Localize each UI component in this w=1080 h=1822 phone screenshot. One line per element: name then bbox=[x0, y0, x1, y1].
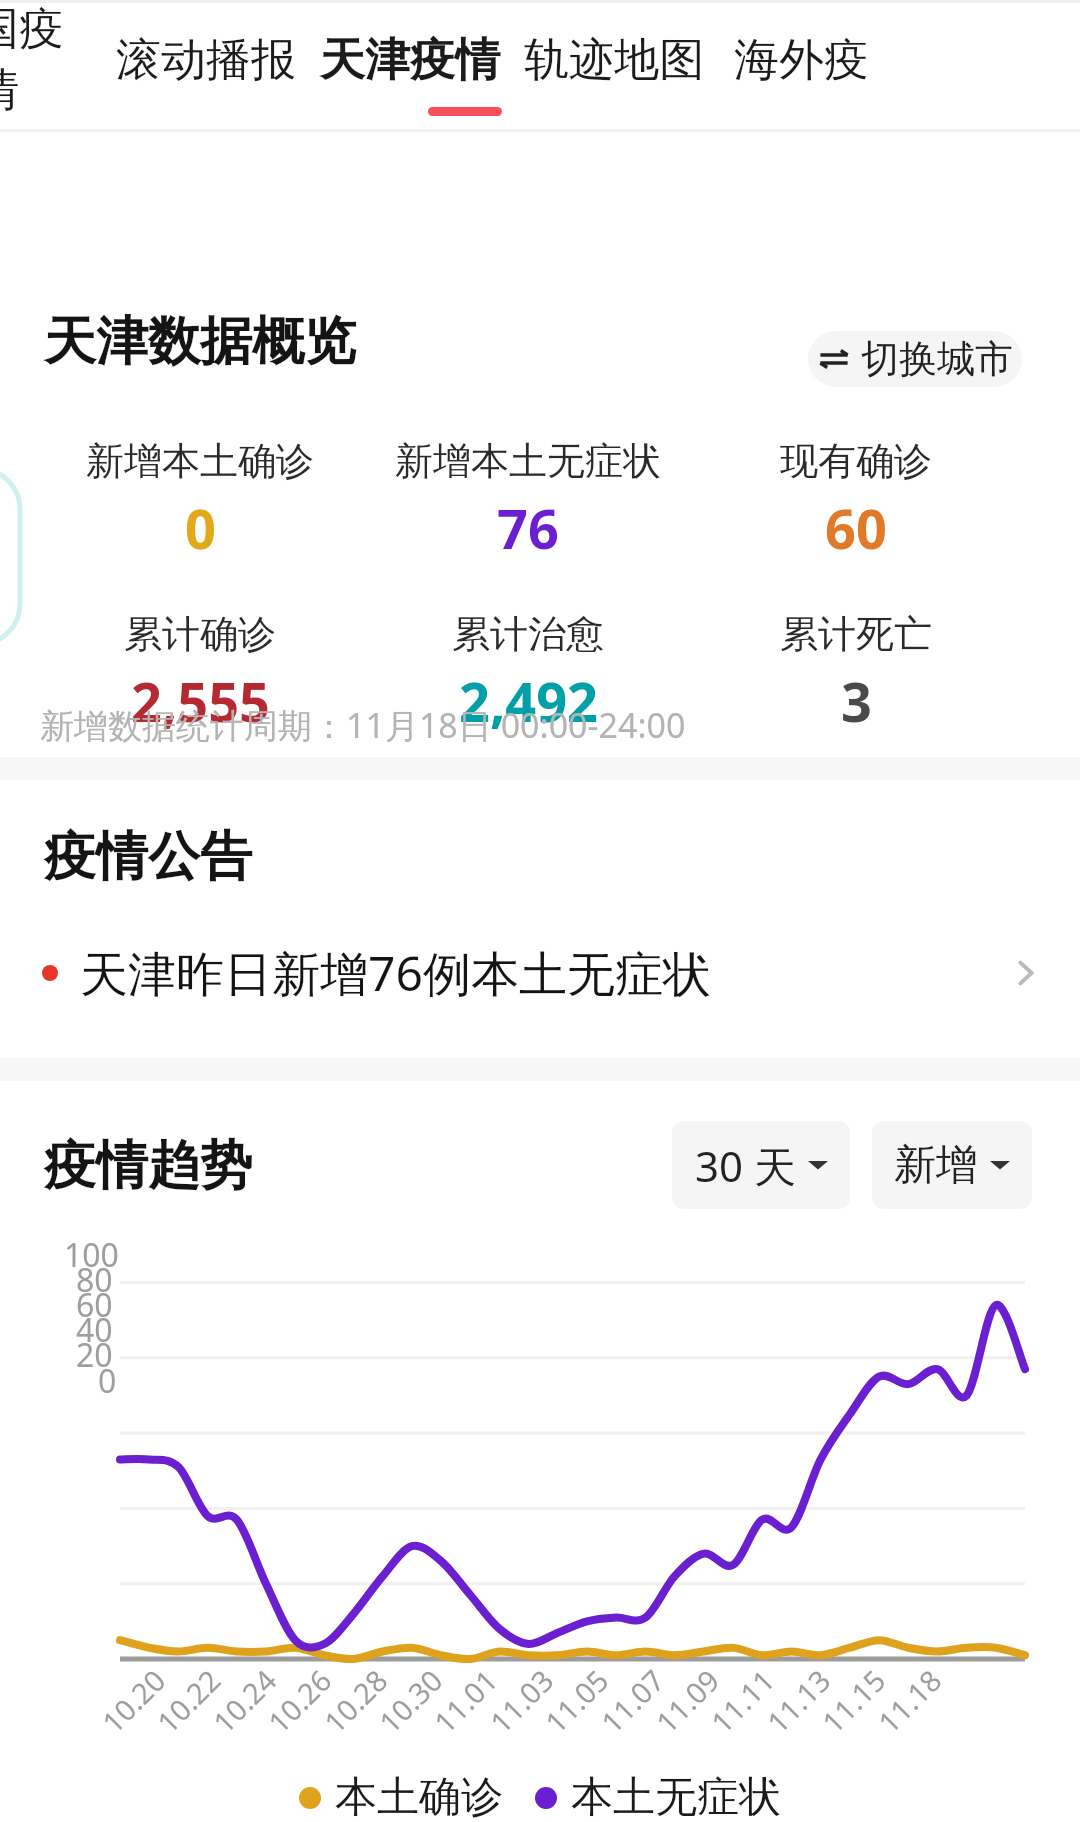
button[interactable]: 切换城市 bbox=[808, 331, 1022, 387]
button[interactable]: 累计死亡 bbox=[676, 610, 1036, 738]
staticText: 2,492 bbox=[459, 664, 598, 738]
button[interactable]: 新增本土确诊 bbox=[20, 437, 380, 565]
staticText: 疫情公告 bbox=[44, 824, 252, 890]
staticText: 轨迹地图 bbox=[524, 32, 704, 89]
staticText: 60 bbox=[76, 1283, 113, 1327]
staticText: 新增本土确诊 bbox=[86, 437, 314, 485]
staticText: 新增数据统计周期：11月18日 00:00-24:00 bbox=[40, 702, 686, 748]
staticText: 天津昨日新增76例本土无症状 bbox=[80, 940, 711, 1006]
staticText: 40 bbox=[76, 1308, 113, 1352]
staticText: 天津疫情 bbox=[320, 32, 500, 89]
button[interactable]: 新增 bbox=[872, 1121, 1032, 1209]
staticText: 累计治愈 bbox=[452, 610, 604, 658]
button[interactable]: 滚动播报 bbox=[104, 0, 308, 120]
staticText: 10.20 bbox=[93, 1660, 174, 1741]
staticText: 0 bbox=[185, 491, 216, 565]
staticText: 11.05 bbox=[536, 1660, 617, 1741]
button[interactable]: 国疫情 bbox=[0, 0, 78, 120]
staticText: 本土确诊 bbox=[335, 1771, 503, 1822]
staticText: 11.01 bbox=[425, 1660, 506, 1741]
staticText: 海外疫 bbox=[734, 32, 869, 89]
button[interactable]: 现有确诊 bbox=[676, 437, 1036, 565]
staticText: 0 bbox=[98, 1359, 117, 1403]
staticText: 累计死亡 bbox=[780, 610, 932, 658]
staticText: 76 bbox=[497, 491, 559, 565]
staticText: 3 bbox=[841, 664, 872, 738]
staticText: 11.13 bbox=[758, 1660, 839, 1741]
staticText: 天津数据概览 bbox=[44, 309, 356, 375]
other: More bbox=[1006, 953, 1046, 993]
button[interactable]: 天津昨日新增76例本土无症状 bbox=[0, 930, 1080, 1016]
staticText: 20 bbox=[76, 1333, 113, 1377]
staticText: 切换城市 bbox=[861, 335, 1013, 383]
staticText: 新增本土无症状 bbox=[395, 437, 661, 485]
staticText: 11.11 bbox=[702, 1660, 783, 1741]
staticText: 滚动播报 bbox=[116, 32, 296, 89]
button[interactable]: 轨迹地图 bbox=[512, 0, 716, 120]
staticText: 10.26 bbox=[259, 1660, 340, 1741]
staticText: 11.18 bbox=[869, 1660, 950, 1741]
button[interactable]: 海外疫 bbox=[716, 0, 886, 120]
staticText: 10.22 bbox=[148, 1660, 229, 1741]
staticText: 11.07 bbox=[592, 1660, 673, 1741]
staticText: 累计确诊 bbox=[124, 610, 276, 658]
button[interactable]: 天津疫情 bbox=[308, 0, 512, 120]
button[interactable]: 累计治愈 bbox=[348, 610, 708, 738]
button[interactable]: 30 天 bbox=[672, 1121, 850, 1209]
staticText: 30 天 bbox=[695, 1137, 796, 1194]
staticText: 80 bbox=[76, 1258, 113, 1302]
button[interactable]: 累计确诊 bbox=[20, 610, 380, 738]
staticText: 11.15 bbox=[813, 1660, 894, 1741]
staticText: 10.30 bbox=[370, 1660, 451, 1741]
staticText: 10.28 bbox=[315, 1660, 396, 1741]
staticText: 疫情趋势 bbox=[44, 1133, 252, 1199]
staticText: 10.24 bbox=[204, 1660, 285, 1741]
staticText: 国疫情 bbox=[0, 1, 78, 119]
staticText: 11.09 bbox=[647, 1660, 728, 1741]
staticText: 2,555 bbox=[131, 664, 270, 738]
button[interactable]: 新增本土无症状 bbox=[348, 437, 708, 565]
staticText: 60 bbox=[825, 491, 887, 565]
staticText: 100 bbox=[64, 1233, 119, 1277]
staticText: 本土无症状 bbox=[571, 1771, 781, 1822]
staticText: 现有确诊 bbox=[780, 437, 932, 485]
staticText: 11.03 bbox=[481, 1660, 562, 1741]
staticText: 新增 bbox=[894, 1139, 978, 1192]
